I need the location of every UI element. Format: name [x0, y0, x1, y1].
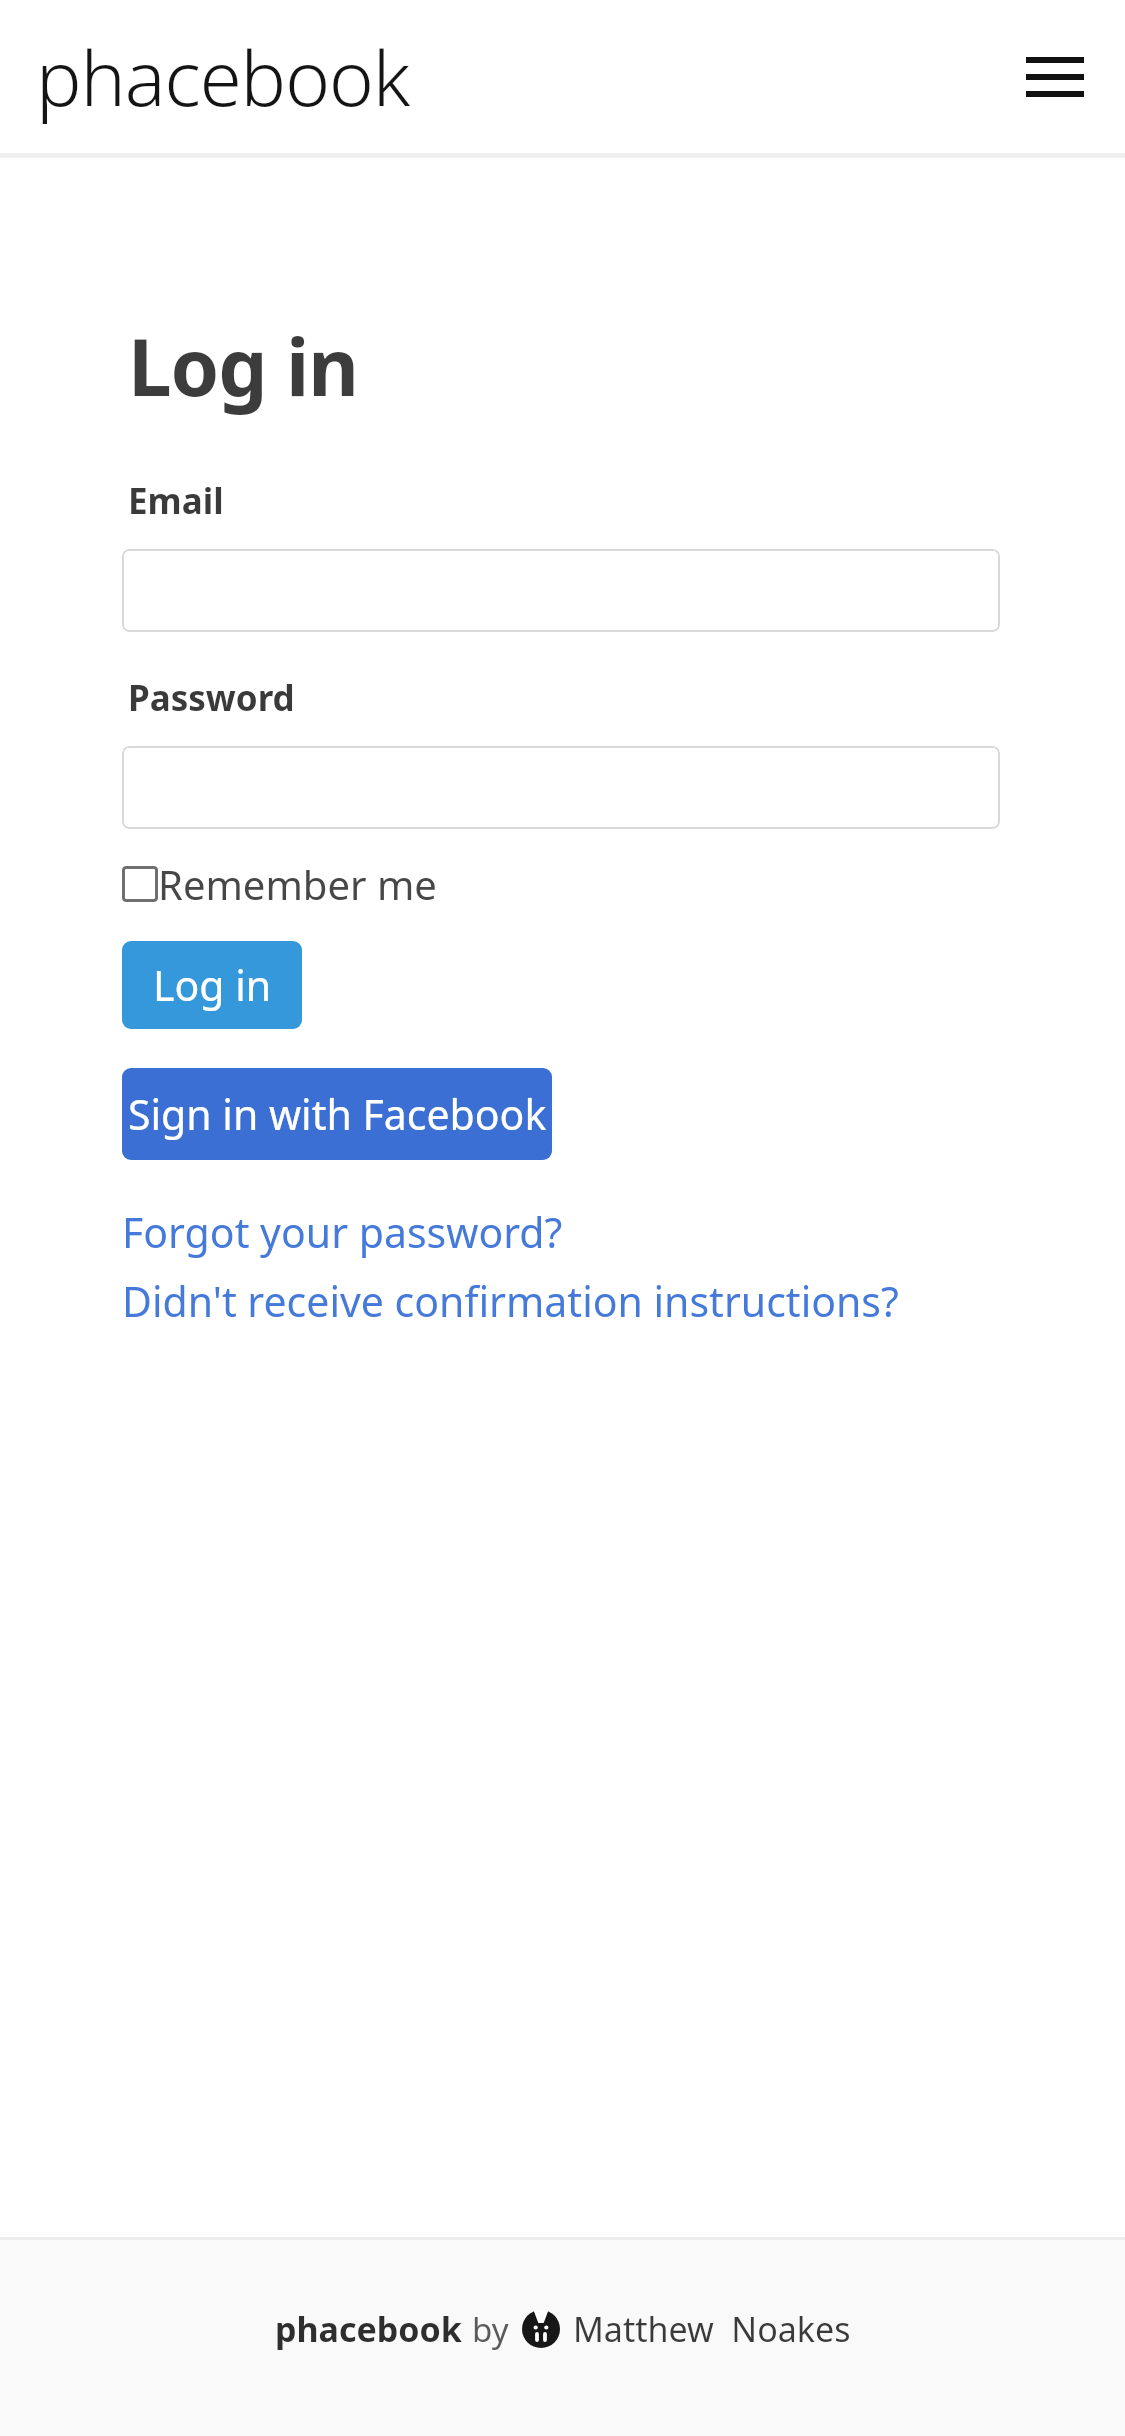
button[interactable]: Forgot your password? — [122, 1204, 563, 1260]
staticText: phacebook — [275, 2306, 462, 2352]
button[interactable]: Matthew Noakes — [573, 2306, 851, 2352]
button[interactable]: Remember me — [122, 857, 437, 911]
staticText: Remember me — [158, 857, 437, 911]
staticText: Sign in with Facebook — [128, 1086, 547, 1142]
button[interactable]: Sign in with Facebook — [122, 1068, 552, 1160]
button[interactable]: phacebook — [275, 2306, 462, 2352]
staticText: Log in — [153, 957, 272, 1013]
button[interactable]: GitHub — [521, 2309, 561, 2349]
button[interactable]: Menu — [1023, 45, 1087, 109]
staticText: Email — [128, 477, 224, 525]
button[interactable]: phacebook — [36, 25, 410, 129]
staticText: Password — [128, 674, 295, 722]
staticText: phacebook — [36, 25, 410, 129]
staticText: by — [472, 2307, 509, 2352]
button[interactable] — [122, 746, 1000, 829]
staticText: Forgot your password? — [122, 1204, 563, 1260]
staticText: Log in — [128, 313, 358, 419]
staticText: Didn't receive confirmation instructions… — [122, 1273, 899, 1329]
staticText: Matthew Noakes — [573, 2306, 851, 2352]
button[interactable]: Log in — [122, 941, 302, 1029]
button[interactable]: Didn't receive confirmation instructions… — [122, 1273, 899, 1329]
button[interactable] — [122, 549, 1000, 632]
